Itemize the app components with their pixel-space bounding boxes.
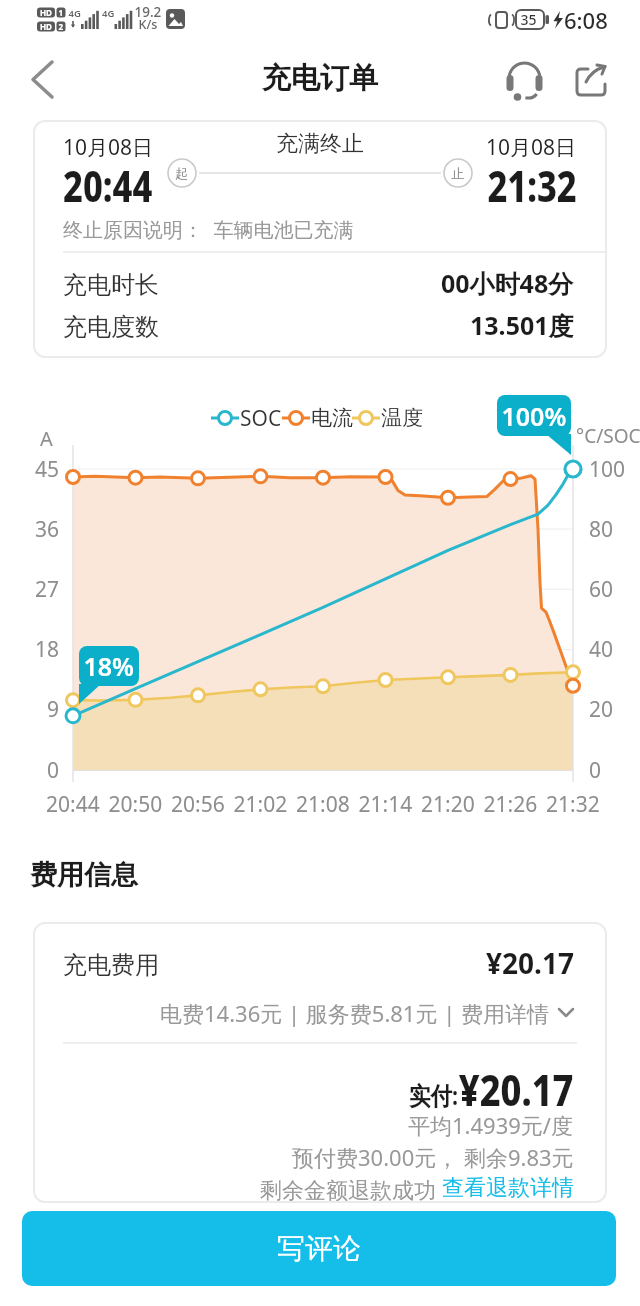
staticText: 预付费30.00元， 剩余9.83元 xyxy=(292,1142,574,1172)
staticText: 20:44 xyxy=(63,156,153,215)
staticText: 止 xyxy=(451,165,464,181)
staticText: 电费14.36元 | 服务费5.81元 | 费用详情 xyxy=(160,998,550,1028)
staticText: 21:32 xyxy=(487,156,577,215)
staticText: 写评论 xyxy=(277,1231,361,1266)
staticText: 终止原因说明： 车辆电池已充满 xyxy=(63,216,354,243)
staticText: 剩余金额退款成功 xyxy=(260,1174,442,1204)
staticText: 13.501度 xyxy=(470,308,574,342)
staticText: 充电时长 xyxy=(63,270,159,300)
staticText: 平均1.4939元/度 xyxy=(408,1110,574,1140)
button[interactable]: 电费14.36元 | 服务费5.81元 | 费用详情 xyxy=(33,998,574,1028)
button[interactable]: 查看退款详情 xyxy=(442,1174,574,1202)
staticText: 费用信息 xyxy=(30,858,138,892)
staticText: ¥20.17 xyxy=(486,944,574,982)
staticText: 充电度数 xyxy=(63,312,159,342)
staticText: 充电费用 xyxy=(63,950,159,980)
button[interactable] xyxy=(570,58,614,102)
staticText: 10月08日 xyxy=(486,133,577,162)
staticText: ¥20.17 xyxy=(459,1061,574,1118)
staticText: 充电订单 xyxy=(262,60,378,97)
button[interactable] xyxy=(502,55,548,105)
staticText: 00小时48分 xyxy=(441,266,574,300)
staticText: 实付: xyxy=(409,1078,459,1112)
staticText: 充满终止 xyxy=(276,130,364,158)
button[interactable]: 写评论 xyxy=(22,1211,616,1286)
staticText: 起 xyxy=(175,165,188,181)
staticText: 10月08日 xyxy=(63,133,154,162)
button[interactable] xyxy=(20,60,64,100)
